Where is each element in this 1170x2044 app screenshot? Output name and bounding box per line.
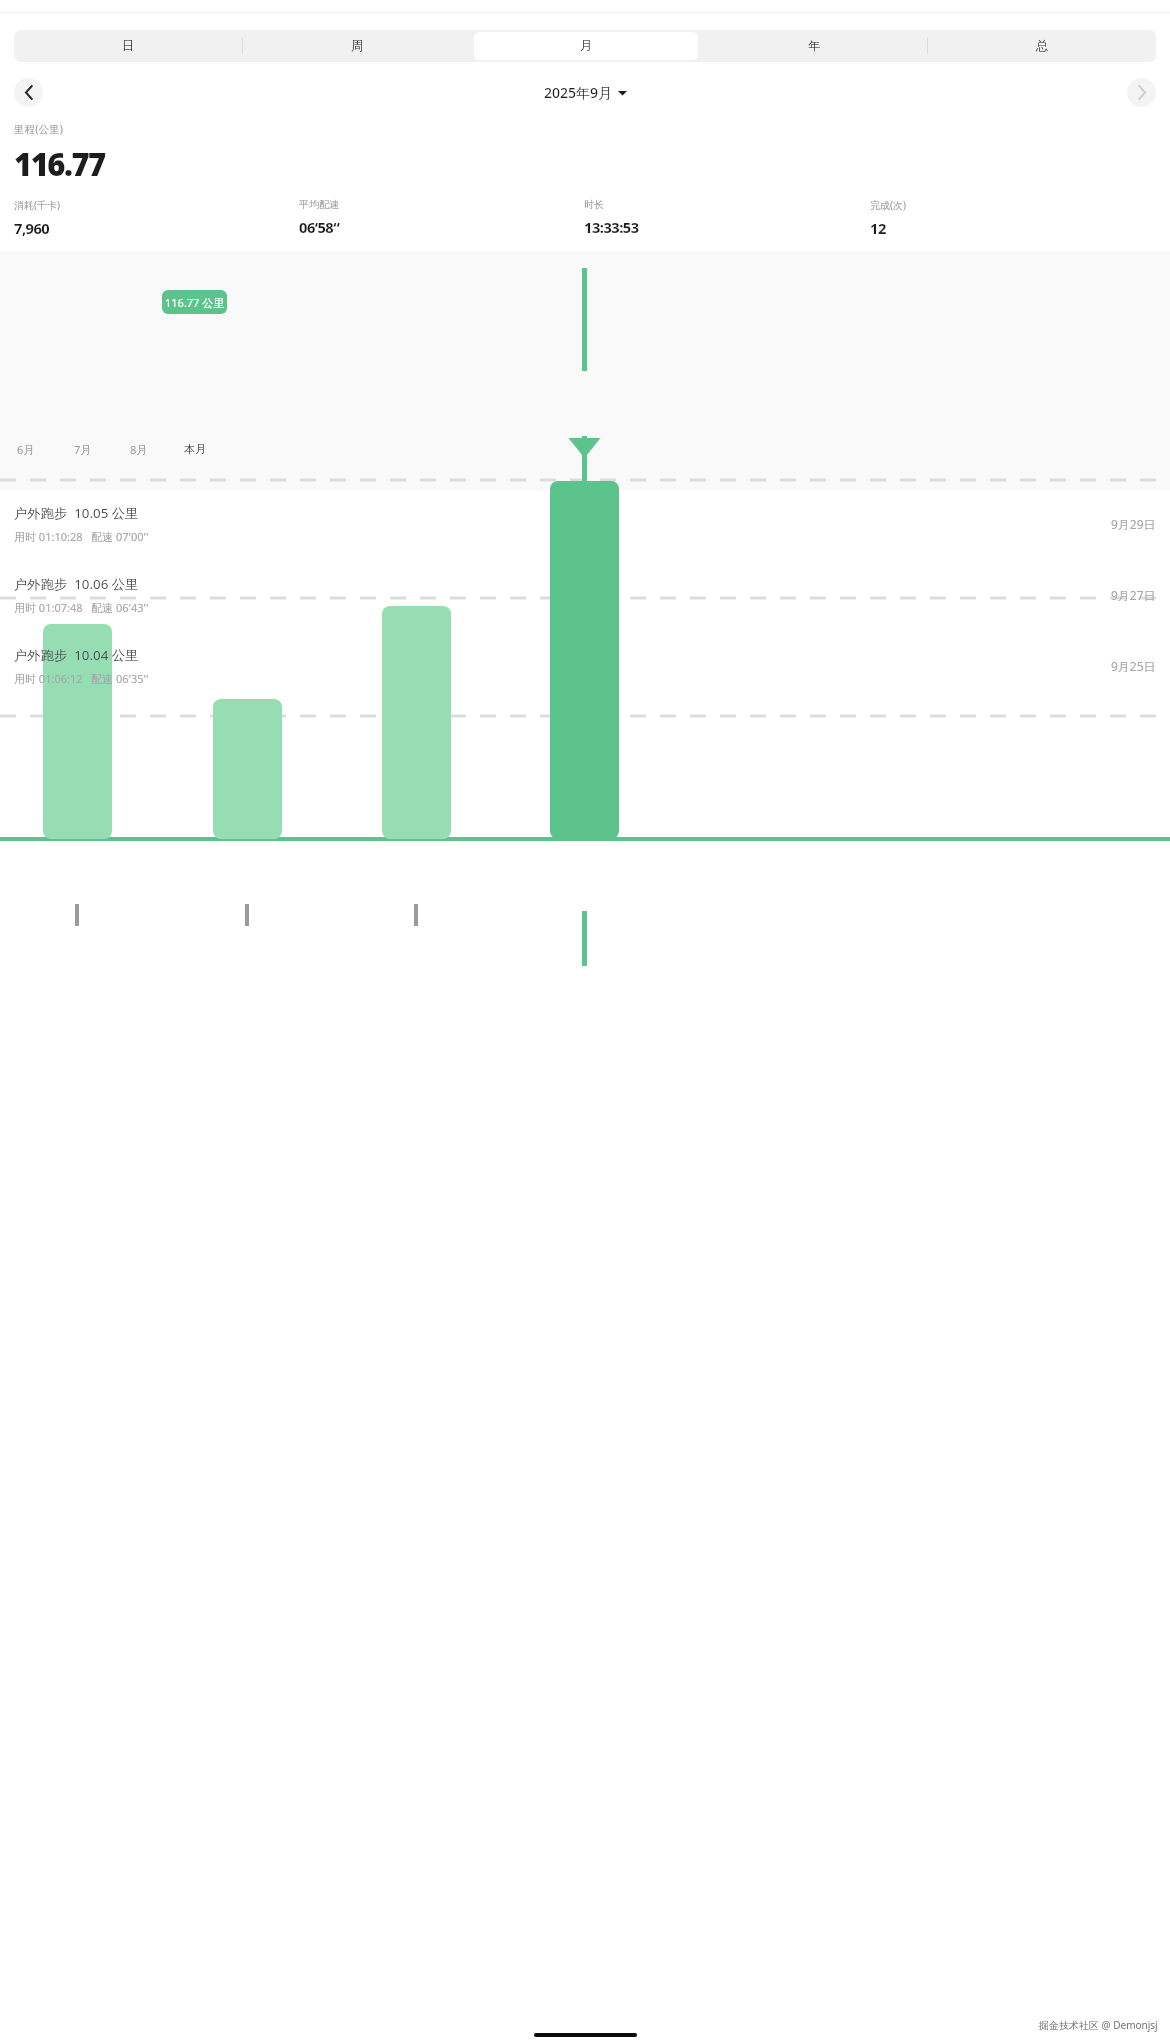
button[interactable]: 总 xyxy=(930,32,1154,60)
staticText: 年 xyxy=(808,38,821,54)
button[interactable]: 周 xyxy=(245,32,470,60)
staticText: 用时 01:10:28 配速 07'00'' xyxy=(14,529,149,544)
staticText: 2025年9月 xyxy=(544,83,613,102)
staticText: 户外跑步 10.05 公里 xyxy=(14,504,139,522)
staticText: 周 xyxy=(351,38,364,54)
staticText: 里程(公里) xyxy=(14,122,64,137)
staticText: 总 xyxy=(1036,38,1049,54)
button[interactable]: 日 xyxy=(16,32,241,60)
staticText: 时长 xyxy=(584,198,604,211)
button[interactable]: 月 xyxy=(474,32,698,60)
staticText: 户外跑步 10.06 公里 xyxy=(14,575,139,593)
button[interactable]: 年 xyxy=(702,32,926,60)
staticText: 9月25日 xyxy=(1111,658,1156,674)
button[interactable]: 户外跑步 10.04 公里 xyxy=(0,644,1170,688)
staticText: 116.77 xyxy=(14,143,105,185)
staticText: 9月29日 xyxy=(1111,516,1156,532)
button[interactable]: Previous month xyxy=(14,78,43,107)
staticText: 完成(次) xyxy=(870,198,906,212)
staticText: 用时 01:06:12 配速 06'35'' xyxy=(14,671,149,686)
staticText: 日 xyxy=(122,38,135,54)
staticText: 消耗(千卡) xyxy=(14,198,60,212)
staticText: 6月 xyxy=(17,442,35,457)
staticText: 7月 xyxy=(74,442,92,457)
staticText: 9月27日 xyxy=(1111,587,1156,603)
staticText: 7,960 xyxy=(14,218,50,238)
button[interactable]: 2025年9月 xyxy=(544,83,627,102)
staticText: 掘金技术社区 @ Demonjsj xyxy=(1039,2018,1158,2032)
staticText: 本月 xyxy=(184,442,206,456)
button[interactable]: 户外跑步 10.06 公里 xyxy=(0,573,1170,617)
staticText: 116.77 公里 xyxy=(165,295,225,310)
staticText: 户外跑步 10.04 公里 xyxy=(14,646,139,664)
staticText: 月 xyxy=(580,38,593,54)
staticText: 平均配速 xyxy=(299,198,339,211)
button[interactable]: 户外跑步 10.05 公里 xyxy=(0,502,1170,546)
staticText: 用时 01:07:48 配速 06'43'' xyxy=(14,600,149,615)
staticText: 8月 xyxy=(130,442,148,457)
staticText: 06‘58“ xyxy=(299,217,340,237)
button[interactable]: Next month xyxy=(1127,78,1156,107)
staticText: 13:33:53 xyxy=(584,217,639,237)
staticText: 12 xyxy=(870,218,886,238)
